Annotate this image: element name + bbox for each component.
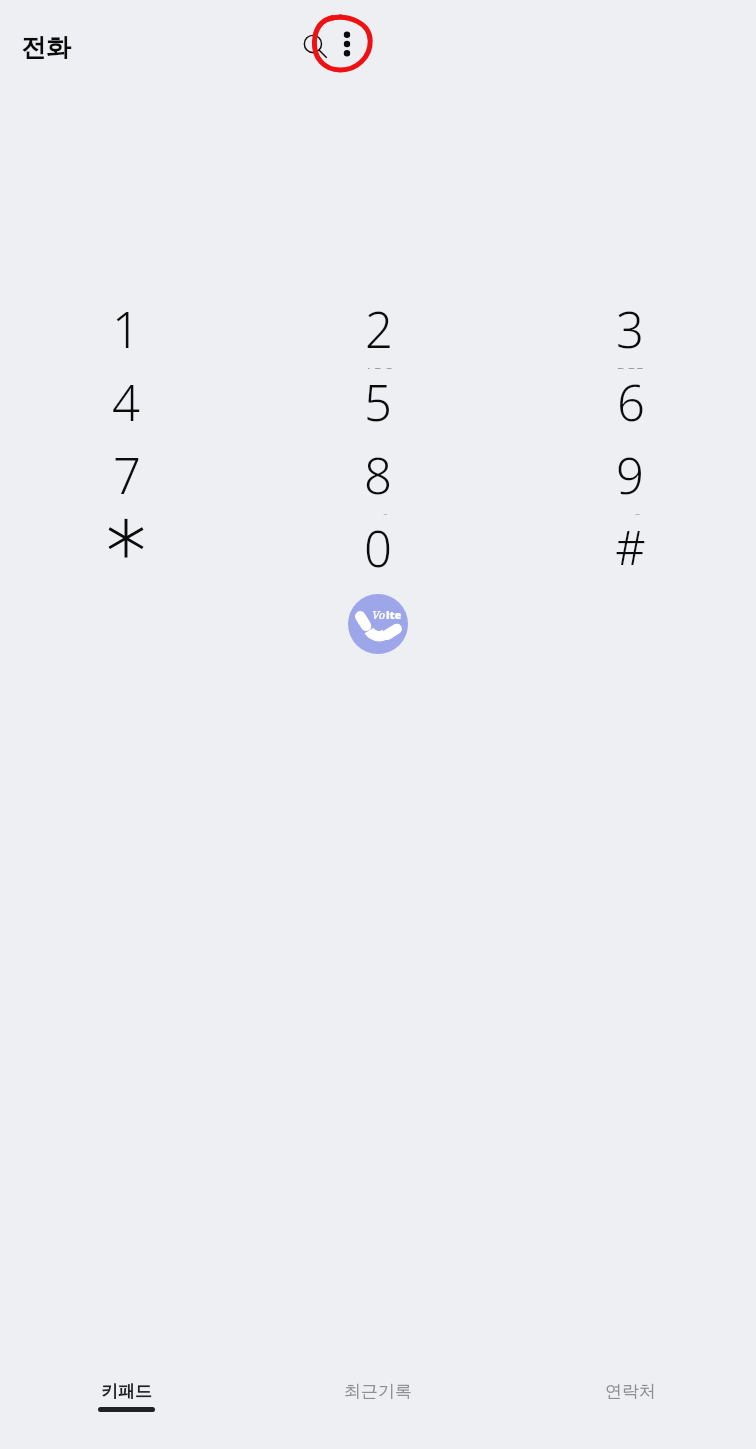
button[interactable]: Search <box>291 22 339 70</box>
staticText: 9 <box>616 442 644 509</box>
button[interactable]: 3 <box>504 296 756 369</box>
staticText: 전화 <box>21 32 71 63</box>
staticText: 6 <box>617 369 645 436</box>
staticText: 연락처 <box>605 1381 656 1402</box>
button[interactable]: Call <box>348 594 408 654</box>
button[interactable]: # <box>504 515 756 588</box>
staticText: 5 <box>364 369 392 436</box>
staticText: 1 <box>112 296 140 363</box>
button[interactable]: 8 <box>252 442 504 515</box>
staticText: 8 <box>364 442 392 509</box>
button[interactable]: 0 <box>252 515 504 588</box>
button[interactable]: More options <box>321 18 373 70</box>
button[interactable]: 최근기록 <box>252 1363 504 1449</box>
staticText: DEF <box>616 363 644 369</box>
staticText: 4 <box>112 369 140 436</box>
staticText: 7 <box>113 442 141 509</box>
staticText: ABC <box>364 363 393 369</box>
button[interactable]: 9 <box>504 442 756 515</box>
staticText: 2 <box>365 296 393 363</box>
staticText: # <box>615 515 646 579</box>
staticText: ㅅㅎ <box>363 510 393 515</box>
button[interactable]: 연락처 <box>504 1363 756 1449</box>
staticText: lte <box>386 607 402 622</box>
button[interactable]: 7 <box>0 442 252 515</box>
button[interactable]: 1 <box>0 296 252 369</box>
button[interactable] <box>0 515 252 588</box>
staticText: 0 <box>364 515 392 582</box>
button[interactable]: 5 <box>252 369 504 442</box>
staticText: Vo <box>372 607 386 622</box>
button[interactable]: 4 <box>0 369 252 442</box>
button[interactable]: 6 <box>504 369 756 442</box>
button[interactable]: 키패드 <box>0 1363 252 1449</box>
staticText: 3 <box>616 296 644 363</box>
staticText: 최근기록 <box>344 1381 412 1402</box>
button[interactable]: 2 <box>252 296 504 369</box>
staticText: ㅈㅊ <box>615 510 645 515</box>
staticText: 키패드 <box>101 1381 152 1402</box>
